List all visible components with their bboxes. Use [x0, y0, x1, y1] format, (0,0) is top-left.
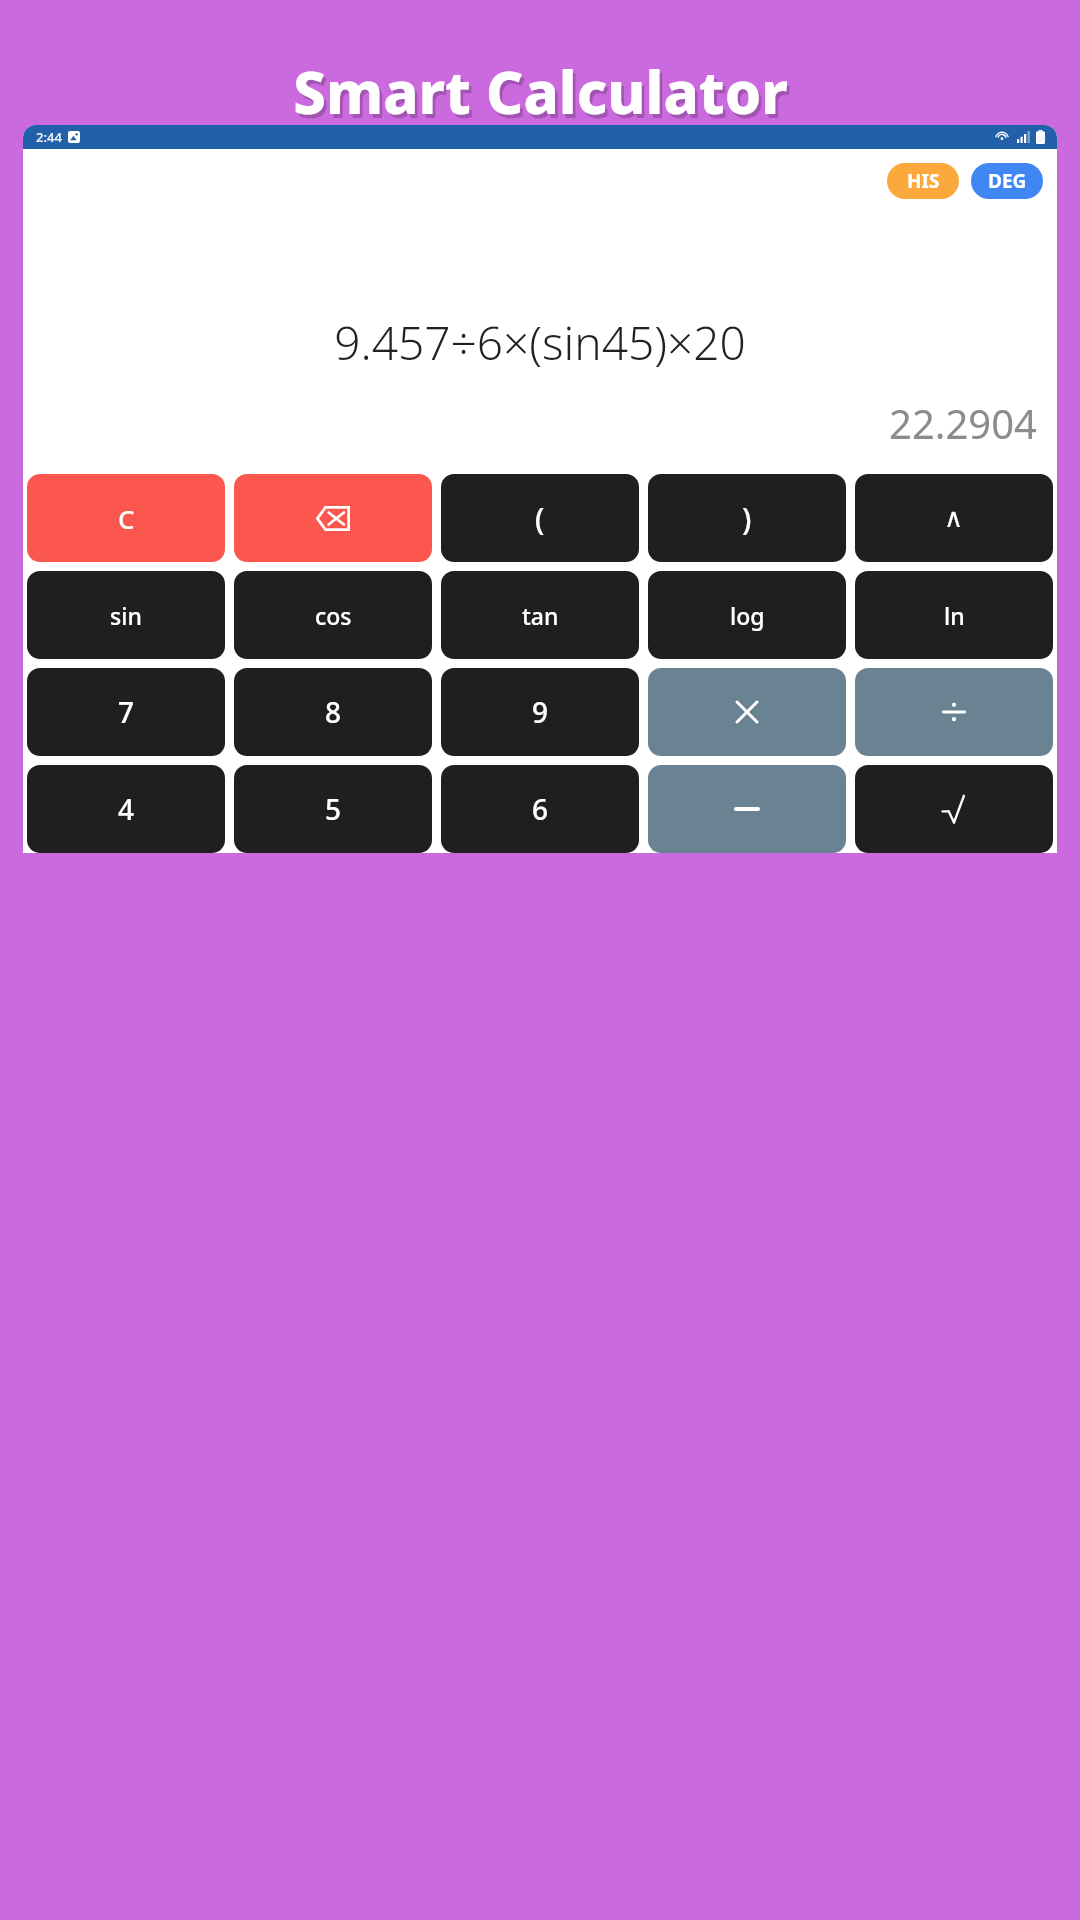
button[interactable]: Backspace — [234, 474, 432, 562]
button[interactable]: ∧ — [855, 474, 1053, 562]
button[interactable]: Subtract — [648, 765, 846, 853]
button[interactable]: 4 — [27, 765, 225, 853]
button[interactable]: 8 — [234, 668, 432, 756]
button[interactable]: 5 — [234, 765, 432, 853]
button[interactable]: DEG — [971, 163, 1043, 199]
button[interactable]: HIS — [887, 163, 959, 199]
staticText: 9.457÷6×(sin45)×20 — [39, 311, 1041, 374]
staticText: ln — [944, 600, 965, 631]
staticText: 8 — [325, 693, 342, 731]
button[interactable]: ln — [855, 571, 1053, 659]
staticText: cos — [315, 600, 352, 631]
staticText: Smart Calculator — [296, 56, 791, 135]
button[interactable]: ( — [441, 474, 639, 562]
staticText: 9 — [532, 693, 549, 731]
staticText: DEG — [988, 168, 1027, 194]
staticText: 7 — [118, 693, 135, 731]
staticText: sin — [110, 600, 142, 631]
button[interactable]: C — [27, 474, 225, 562]
staticText: C — [118, 501, 135, 536]
button[interactable]: log — [648, 571, 846, 659]
staticText: ∧ — [944, 503, 964, 533]
button[interactable]: tan — [441, 571, 639, 659]
button[interactable]: ) — [648, 474, 846, 562]
button[interactable]: Multiply — [648, 668, 846, 756]
staticText: Smart Calculator — [293, 52, 788, 131]
staticText: log — [730, 600, 765, 631]
button[interactable]: 6 — [441, 765, 639, 853]
button[interactable]: Square root — [855, 765, 1053, 853]
staticText: 2:44 — [36, 128, 62, 146]
staticText: ( — [535, 498, 545, 539]
button[interactable]: cos — [234, 571, 432, 659]
staticText: HIS — [907, 168, 940, 194]
button[interactable]: 9 — [441, 668, 639, 756]
staticText: tan — [522, 600, 559, 631]
button[interactable]: Divide — [855, 668, 1053, 756]
button[interactable]: sin — [27, 571, 225, 659]
staticText: 4 — [118, 790, 135, 828]
staticText: 5 — [325, 790, 342, 828]
staticText: 22.2904 — [23, 396, 1037, 450]
button[interactable]: 7 — [27, 668, 225, 756]
staticText: 6 — [532, 790, 549, 828]
staticText: ) — [742, 498, 752, 539]
